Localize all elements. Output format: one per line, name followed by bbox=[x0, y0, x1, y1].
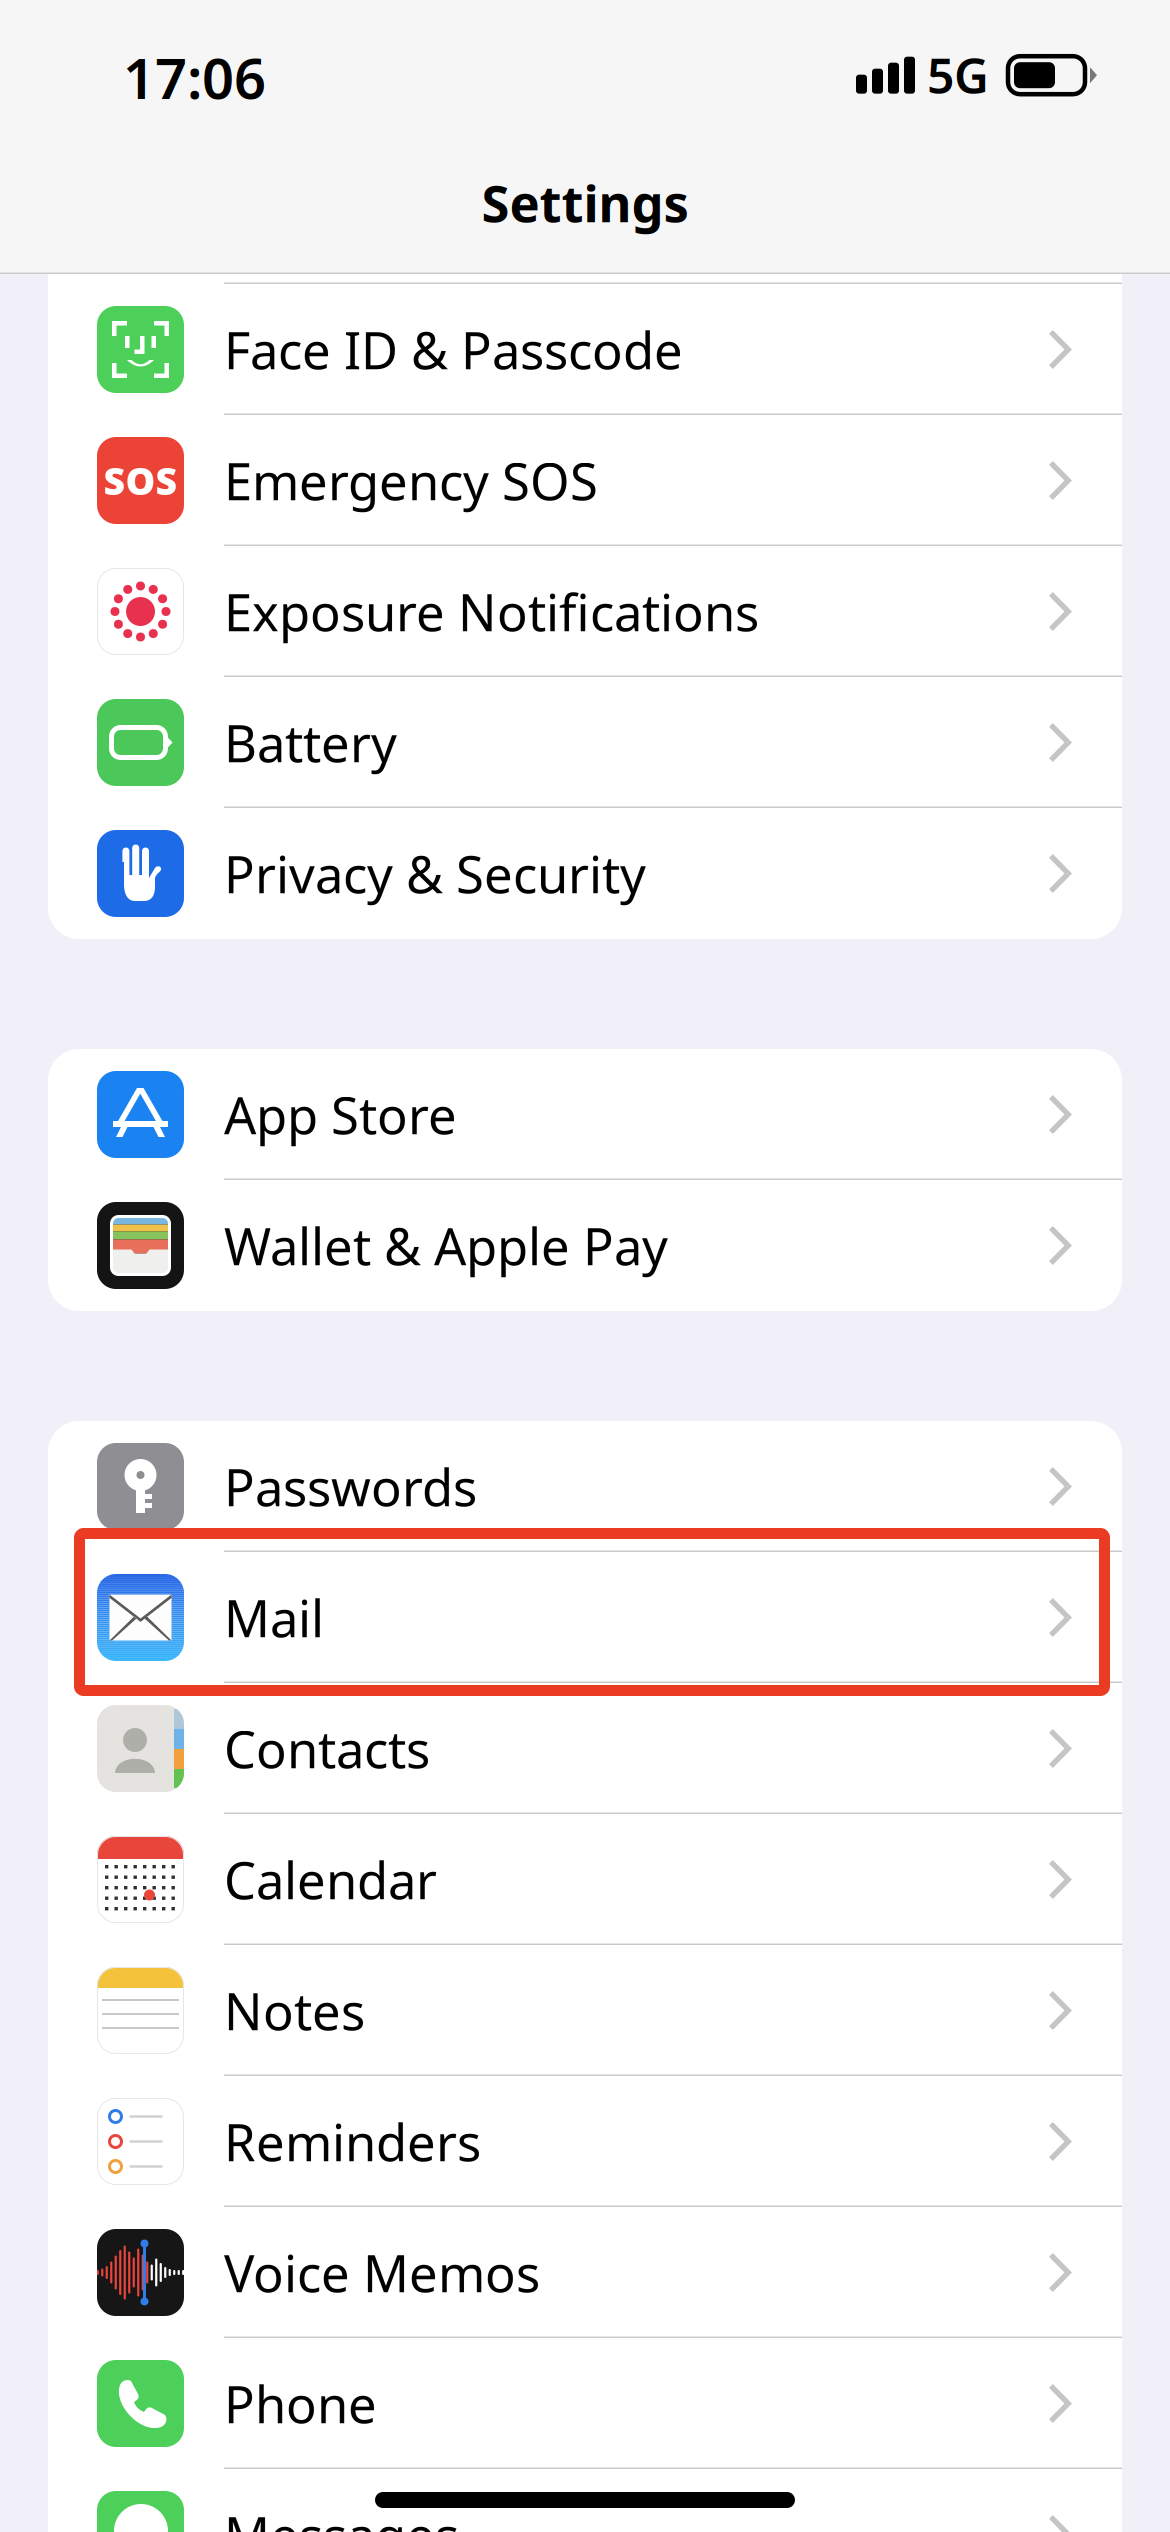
button[interactable]: Mail bbox=[48, 1552, 1122, 1683]
button[interactable]: App Store bbox=[48, 1049, 1122, 1180]
button[interactable]: Contacts bbox=[48, 1683, 1122, 1814]
button[interactable]: Reminders bbox=[48, 2076, 1122, 2207]
button[interactable]: Calendar bbox=[48, 1814, 1122, 1945]
button[interactable]: Notes bbox=[48, 1945, 1122, 2076]
button[interactable]: Face ID & Passcode bbox=[48, 284, 1122, 415]
staticText: App Store bbox=[224, 1081, 457, 1148]
button[interactable]: Passwords bbox=[48, 1421, 1122, 1552]
staticText: Mail bbox=[224, 1584, 324, 1651]
staticText: 5G bbox=[927, 43, 989, 107]
staticText: Passwords bbox=[224, 1453, 477, 1520]
staticText: Calendar bbox=[224, 1846, 437, 1913]
staticText: Reminders bbox=[224, 2108, 481, 2175]
staticText: Emergency SOS bbox=[224, 447, 598, 514]
staticText: Privacy & Security bbox=[224, 840, 646, 907]
staticText: Notes bbox=[224, 1977, 365, 2044]
staticText: Wallet & Apple Pay bbox=[224, 1212, 668, 1279]
staticText: Battery bbox=[224, 709, 397, 776]
button[interactable]: Battery bbox=[48, 677, 1122, 808]
button[interactable]: Privacy & Security bbox=[48, 808, 1122, 939]
staticText: Settings bbox=[481, 169, 688, 236]
button[interactable]: SOS bbox=[48, 415, 1122, 546]
staticText: Face ID & Passcode bbox=[224, 316, 683, 383]
staticText: Contacts bbox=[224, 1715, 430, 1782]
button[interactable]: Phone bbox=[48, 2338, 1122, 2469]
staticText: SOS bbox=[103, 456, 177, 505]
staticText: 17:06 bbox=[123, 40, 266, 114]
button[interactable]: Exposure Notifications bbox=[48, 546, 1122, 677]
button[interactable]: Messages bbox=[48, 2469, 1122, 2532]
button[interactable]: Wallet & Apple Pay bbox=[48, 1180, 1122, 1311]
staticText: Exposure Notifications bbox=[224, 578, 759, 645]
staticText: Voice Memos bbox=[224, 2239, 540, 2306]
button[interactable]: Voice Memos bbox=[48, 2207, 1122, 2338]
staticText: Messages bbox=[224, 2501, 459, 2532]
staticText: Phone bbox=[224, 2370, 377, 2437]
